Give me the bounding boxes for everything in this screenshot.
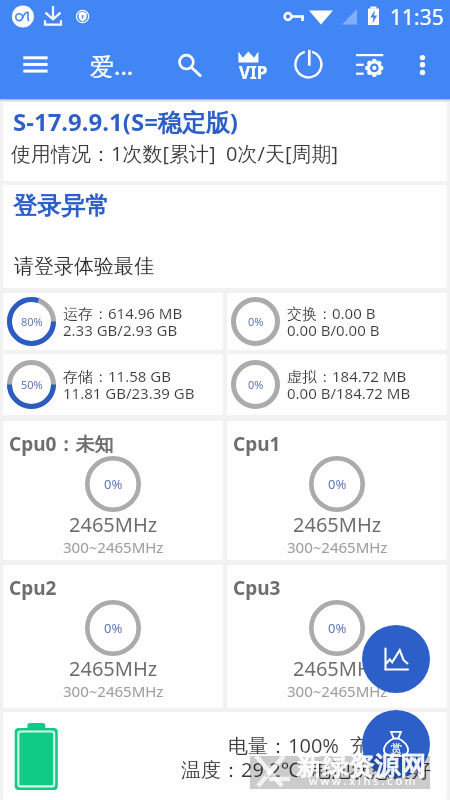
staticText: 2.33 GB/2.93 GB: [63, 320, 178, 340]
button[interactable]: 0%: [227, 354, 447, 415]
staticText: 温度：29.2℃ 电池状态良好: [181, 756, 431, 783]
button[interactable]: Search: [168, 40, 206, 78]
button[interactable]: Reward: [362, 710, 430, 778]
button[interactable]: 50%: [3, 354, 223, 415]
staticText: 0%: [248, 314, 264, 329]
staticText: 虚拟：184.72 MB: [287, 366, 407, 386]
staticText: 0.00 B/184.72 MB: [287, 383, 411, 403]
staticText: 300~2465MHz: [287, 681, 388, 701]
staticText: VIP: [239, 61, 268, 84]
staticText: 电量：100% 充电中…: [228, 732, 426, 759]
button[interactable]: Menu: [17, 41, 55, 89]
staticText: Cpu2: [9, 575, 57, 601]
staticText: 2465MHz: [293, 511, 382, 538]
button[interactable]: Cpu2: [3, 565, 223, 708]
button[interactable]: 登录异常: [3, 185, 447, 288]
staticText: 50%: [21, 377, 43, 392]
staticText: 80%: [21, 314, 43, 329]
staticText: Cpu0：未知: [9, 431, 114, 457]
staticText: 0%: [328, 475, 347, 493]
button[interactable]: S-17.9.9.1(S=稳定版): [3, 102, 447, 181]
staticText: 使用情况：1次数[累计] 0次/天[周期]: [11, 140, 339, 167]
staticText: 0.00 B/0.00 B: [287, 320, 380, 340]
staticText: 新绿资源网: [296, 750, 426, 783]
staticText: 爱...: [90, 49, 134, 82]
button[interactable]: 爱...: [90, 49, 134, 82]
button[interactable]: 电量：100% 充电中…: [3, 712, 447, 800]
staticText: 0%: [248, 377, 264, 392]
staticText: 交换：0.00 B: [287, 303, 376, 323]
staticText: 2465MHz: [69, 511, 158, 538]
button[interactable]: Settings: [352, 40, 388, 76]
button[interactable]: Cpu3: [227, 565, 447, 708]
staticText: 300~2465MHz: [287, 537, 388, 557]
staticText: 存储：11.58 GB: [63, 366, 171, 386]
staticText: 300~2465MHz: [63, 537, 164, 557]
button[interactable]: Performance chart: [362, 625, 430, 693]
staticText: Cpu1: [233, 431, 281, 457]
staticText: 2465MHz: [69, 655, 158, 682]
button[interactable]: More options: [410, 40, 436, 84]
staticText: 11:35: [390, 3, 444, 32]
staticText: S-17.9.9.1(S=稳定版): [13, 105, 238, 138]
staticText: 0%: [104, 619, 123, 637]
staticText: 赏: [391, 741, 402, 755]
staticText: 0%: [328, 619, 347, 637]
button[interactable]: 80%: [3, 293, 223, 350]
staticText: 0%: [104, 475, 123, 493]
staticText: Cpu3: [233, 575, 281, 601]
staticText: 登录异常: [13, 191, 109, 221]
button[interactable]: Cpu1: [227, 421, 447, 560]
staticText: 300~2465MHz: [63, 681, 164, 701]
button[interactable]: Power: [292, 40, 327, 75]
button[interactable]: 0%: [227, 293, 447, 350]
staticText: 2465MHz: [293, 655, 382, 682]
staticText: 运存：614.96 MB: [63, 303, 183, 323]
staticText: 请登录体验最佳: [14, 254, 154, 279]
staticText: 11.81 GB/23.39 GB: [63, 383, 195, 403]
staticText: w w w . x l h s . c o m: [309, 773, 416, 788]
button[interactable]: VIP: [234, 39, 266, 89]
button[interactable]: Cpu0：未知: [3, 421, 223, 560]
